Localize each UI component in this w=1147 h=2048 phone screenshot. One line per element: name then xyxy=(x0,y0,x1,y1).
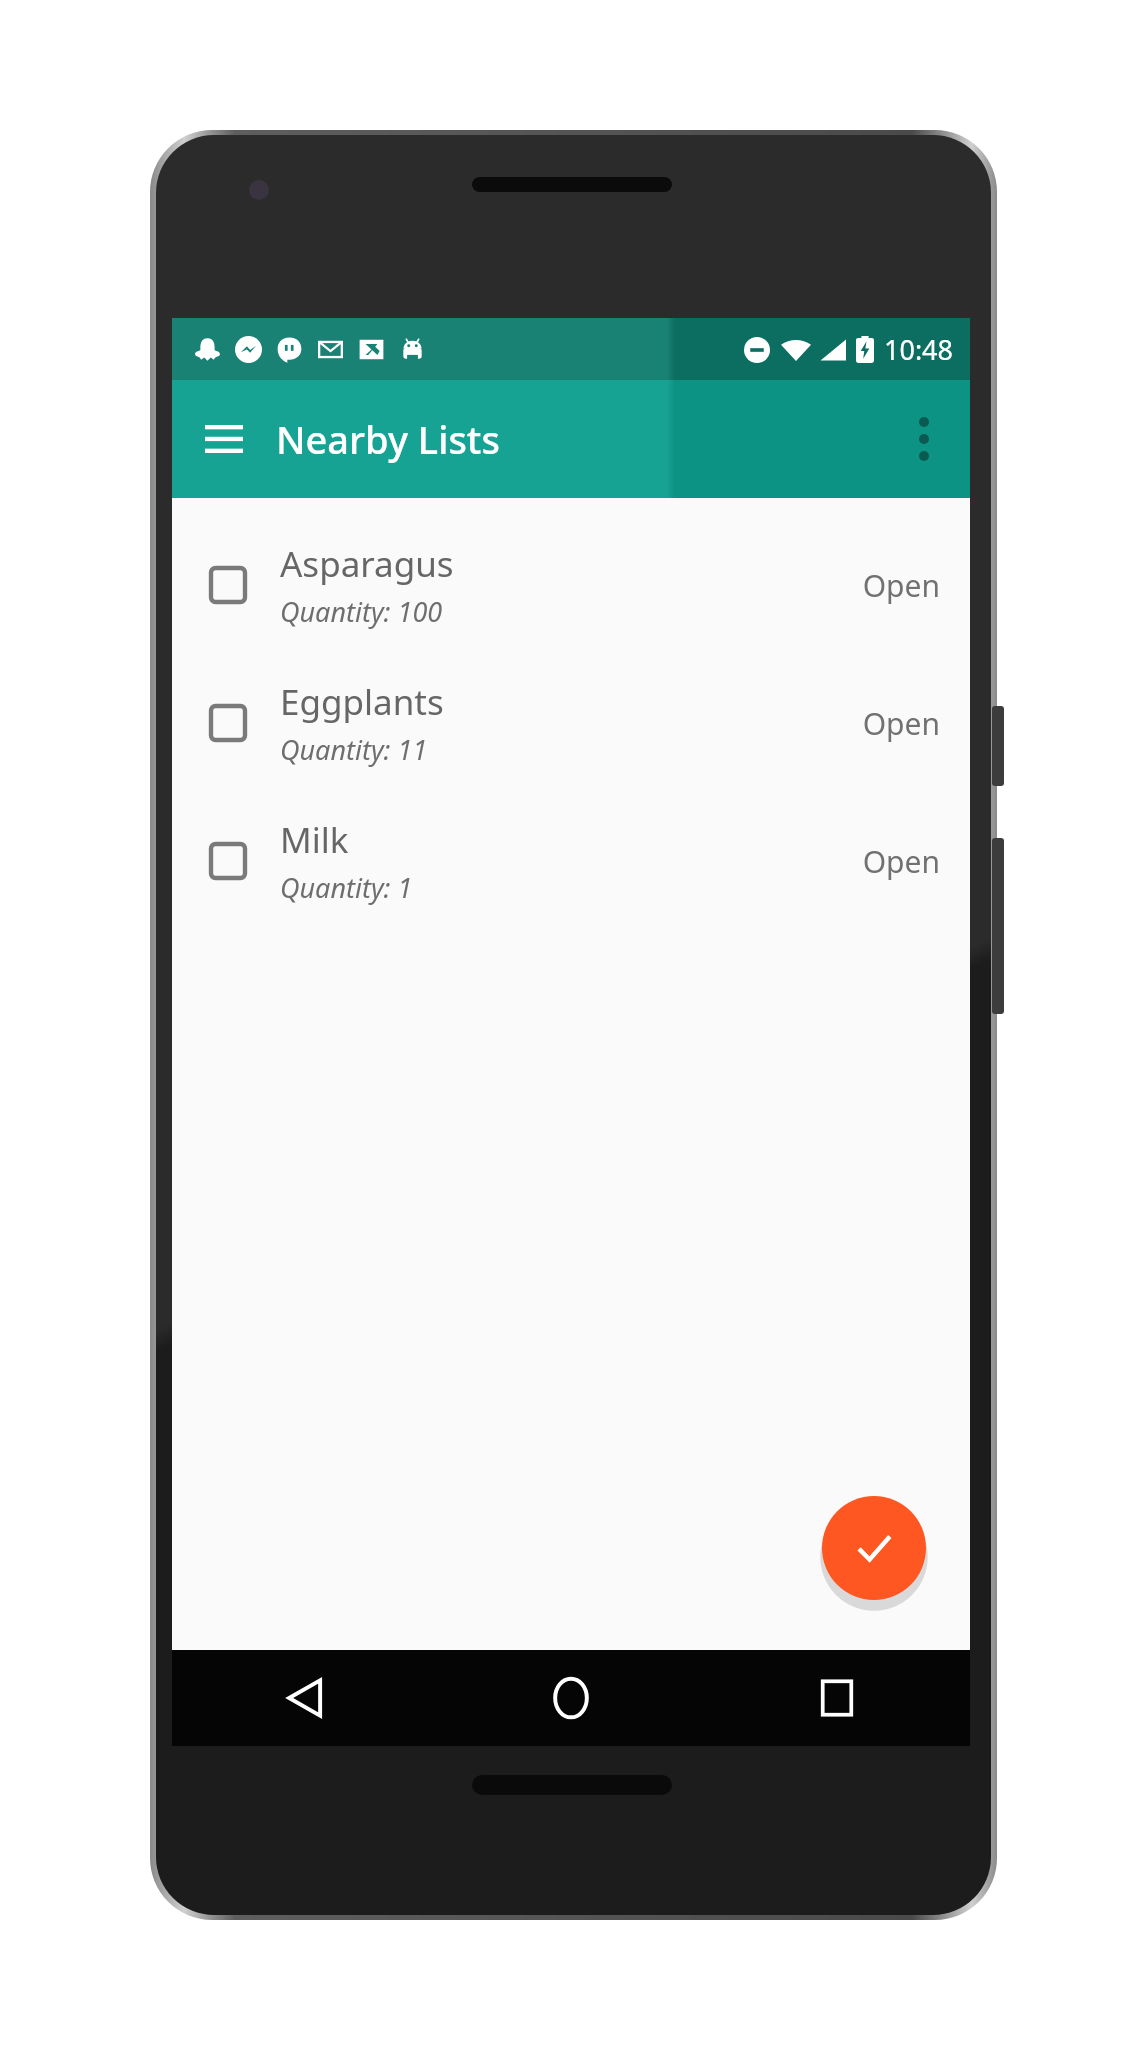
button[interactable]: Confirm xyxy=(822,1496,926,1600)
staticText: Asparagus xyxy=(280,540,454,588)
button[interactable]: Toggle Asparagus xyxy=(200,557,256,613)
button[interactable]: Recent apps xyxy=(704,1650,970,1746)
staticText: Milk xyxy=(280,816,349,864)
button[interactable]: Open xyxy=(862,841,940,882)
button[interactable]: Open xyxy=(862,565,940,606)
button[interactable]: Toggle Asparagus xyxy=(172,516,970,654)
button[interactable]: Open navigation menu xyxy=(190,405,258,473)
staticText: Quantity: 100 xyxy=(280,593,443,630)
staticText: Nearby Lists xyxy=(276,413,500,465)
button[interactable]: Toggle Milk xyxy=(200,833,256,889)
button[interactable]: Toggle Eggplants xyxy=(200,695,256,751)
staticText: Quantity: 1 xyxy=(280,869,413,906)
button[interactable]: Home xyxy=(438,1650,704,1746)
button[interactable]: Toggle Eggplants xyxy=(172,654,970,792)
button[interactable]: Toggle Milk xyxy=(172,792,970,930)
staticText: 10:48 xyxy=(884,331,954,368)
button[interactable]: More options xyxy=(892,407,956,471)
button[interactable]: Open xyxy=(862,703,940,744)
button[interactable]: Back xyxy=(172,1650,438,1746)
staticText: Eggplants xyxy=(280,678,444,726)
staticText: Quantity: 11 xyxy=(280,731,428,768)
